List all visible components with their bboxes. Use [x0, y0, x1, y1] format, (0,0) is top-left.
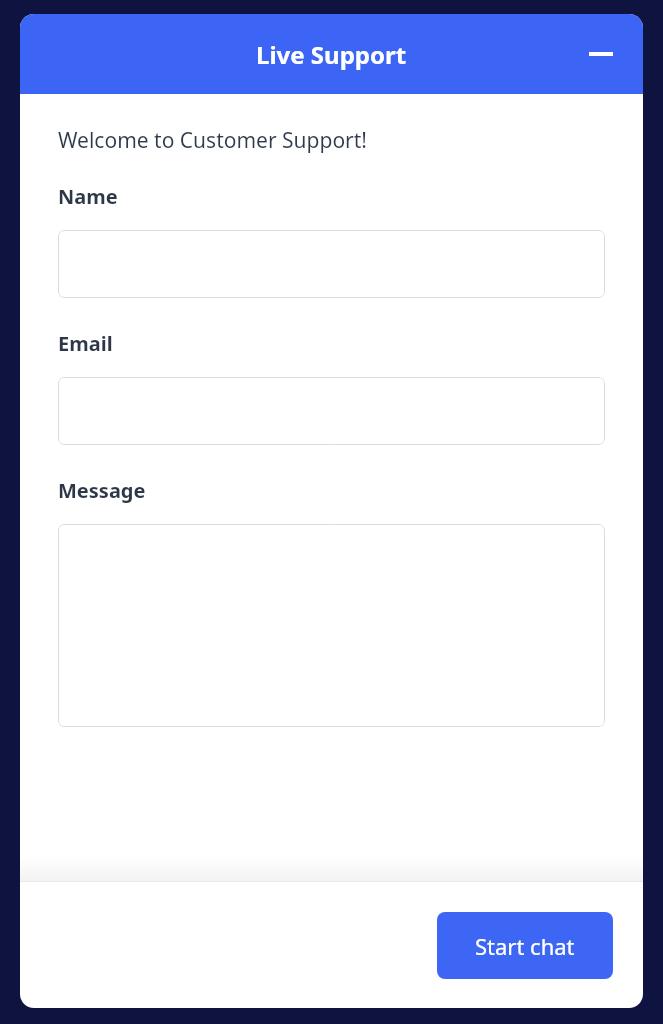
staticText: Welcome to Customer Support!: [58, 126, 367, 155]
button[interactable]: Text input: [58, 377, 605, 445]
staticText: Email: [58, 330, 113, 357]
staticText: Start chat: [475, 931, 575, 961]
staticText: Live Support: [256, 38, 407, 71]
button[interactable]: Minimize: [579, 32, 623, 76]
staticText: Name: [58, 183, 118, 210]
button[interactable]: Text input: [58, 524, 605, 727]
button[interactable]: Text input: [58, 230, 605, 298]
button[interactable]: Start chat: [437, 912, 613, 979]
staticText: Message: [58, 477, 146, 504]
